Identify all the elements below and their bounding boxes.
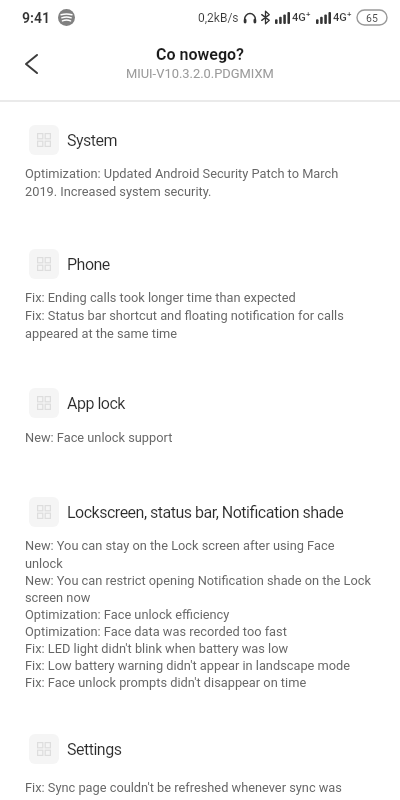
button[interactable]: Phone (29, 249, 375, 279)
staticText: New: Face unlock support (25, 430, 173, 445)
button[interactable]: System (29, 125, 375, 155)
staticText: Settings (67, 740, 122, 759)
staticText: + (347, 10, 352, 19)
staticText: 9:41 (22, 10, 51, 26)
staticText: Lockscreen, status bar, Notification sha… (67, 503, 344, 522)
button[interactable]: App lock (29, 388, 375, 418)
staticText: 4G (292, 11, 306, 24)
staticText: MIUI-V10.3.2.0.PDGMIXM (126, 66, 274, 81)
button[interactable] (26, 55, 37, 73)
staticText: Fix: Sync page couldn't be refreshed whe… (25, 780, 342, 800)
button[interactable]: Settings (29, 734, 375, 764)
staticText: Phone (67, 255, 110, 274)
staticText: 65 (366, 12, 378, 24)
staticText: System (67, 131, 118, 150)
staticText: New: You can stay on the Lock screen aft… (25, 538, 371, 690)
staticText: Co nowego? (156, 45, 245, 64)
staticText: 0,2kB/s (198, 11, 239, 25)
staticText: 4G (333, 11, 347, 24)
button[interactable]: Lockscreen, status bar, Notification sha… (29, 497, 375, 527)
staticText: Fix: Ending calls took longer time than … (25, 290, 344, 341)
staticText: Optimization: Updated Android Security P… (25, 166, 339, 199)
staticText: App lock (67, 394, 125, 413)
staticText: + (306, 10, 311, 19)
